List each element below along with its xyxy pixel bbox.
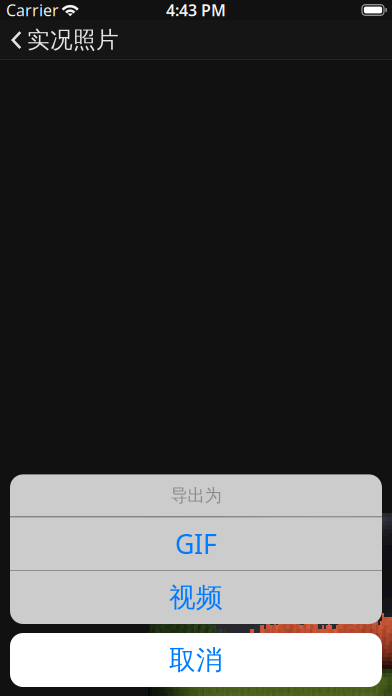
staticText: GIF bbox=[175, 526, 217, 561]
button[interactable]: 取消 bbox=[10, 633, 382, 687]
staticText: 视频 bbox=[169, 581, 223, 614]
staticText: 4:43 PM bbox=[166, 0, 226, 21]
button[interactable]: 视频 bbox=[10, 571, 382, 624]
button[interactable]: GIF bbox=[10, 517, 382, 570]
staticText: Carrier bbox=[6, 0, 59, 21]
button[interactable]: 实况照片 bbox=[0, 20, 129, 60]
staticText: 实况照片 bbox=[27, 26, 119, 54]
staticText: 取消 bbox=[169, 644, 223, 676]
staticText: 导出为 bbox=[170, 485, 221, 506]
